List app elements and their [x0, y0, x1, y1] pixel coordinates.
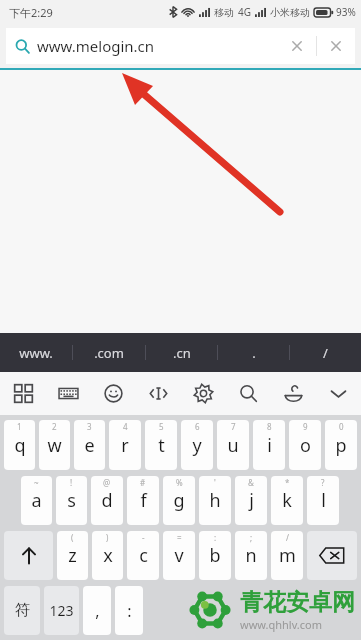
staticText: # — [140, 477, 146, 488]
button[interactable]: Emoji — [91, 372, 136, 415]
button[interactable]: l — [307, 476, 339, 525]
button[interactable]: .com — [73, 333, 145, 372]
button[interactable]: Backspace — [307, 531, 357, 580]
button[interactable]: z — [57, 531, 88, 580]
button[interactable]: p — [325, 420, 357, 470]
button[interactable]: 符 — [4, 586, 40, 635]
staticText: 2 — [52, 421, 57, 432]
button[interactable]: e — [74, 420, 105, 470]
button[interactable]: f — [127, 476, 159, 525]
staticText: 4G — [238, 5, 251, 19]
button[interactable]: Keyboard layout — [46, 372, 91, 415]
button[interactable]: y — [181, 420, 213, 470]
button[interactable]: b — [199, 531, 231, 580]
button[interactable]: Apps — [0, 372, 46, 415]
staticText: www.qhhlv.com — [240, 617, 322, 632]
button[interactable]: Voice input — [271, 372, 316, 415]
staticText: 3 — [87, 421, 92, 432]
staticText: ! — [70, 477, 73, 488]
button[interactable]: www. — [0, 333, 72, 372]
staticText: m — [279, 543, 296, 568]
staticText: 移动 — [214, 6, 234, 19]
staticText: .cn — [173, 344, 191, 362]
staticText: 6 — [195, 421, 200, 432]
button[interactable]: x — [92, 531, 123, 580]
button[interactable]: Clear text — [278, 28, 316, 64]
button[interactable]: , — [83, 586, 111, 635]
staticText: s — [67, 488, 76, 513]
button[interactable]: w — [39, 420, 70, 470]
button[interactable]: h — [199, 476, 231, 525]
staticText: = — [177, 532, 182, 543]
staticText: ? — [321, 477, 325, 488]
staticText: ) — [106, 532, 109, 543]
staticText: 123 — [49, 601, 74, 620]
staticText: www.melogin.cn — [37, 36, 155, 56]
button[interactable]: . — [218, 333, 289, 372]
staticText: o — [300, 433, 311, 458]
staticText: 青花安卓网 — [240, 588, 355, 617]
staticText: q — [14, 433, 26, 458]
button[interactable]: Close — [317, 28, 355, 64]
button[interactable]: t — [145, 420, 177, 470]
button[interactable]: d — [91, 476, 123, 525]
staticText: 下午2:29 — [9, 5, 53, 20]
staticText: ; — [250, 532, 253, 543]
button[interactable]: Hide keyboard — [316, 372, 361, 415]
staticText: r — [121, 433, 129, 458]
staticText: i — [267, 433, 272, 458]
button[interactable]: Cursor control — [136, 372, 181, 415]
staticText: 8 — [267, 421, 272, 432]
staticText: v — [174, 543, 184, 568]
staticText: f — [140, 488, 147, 513]
staticText: 5 — [159, 421, 164, 432]
button[interactable]: a — [21, 476, 52, 525]
staticText: ( — [71, 532, 74, 543]
staticText: / — [286, 532, 289, 543]
staticText: / — [323, 344, 328, 362]
staticText: a — [31, 488, 42, 513]
button[interactable]: Settings — [181, 372, 226, 415]
staticText: p — [335, 433, 347, 458]
staticText: 4 — [123, 421, 128, 432]
button[interactable]: k — [271, 476, 303, 525]
button[interactable]: 123 — [44, 586, 79, 635]
button[interactable]: i — [253, 420, 285, 470]
staticText: , — [95, 600, 100, 622]
button[interactable]: o — [289, 420, 321, 470]
button[interactable]: r — [109, 420, 141, 470]
button[interactable]: n — [235, 531, 267, 580]
button[interactable]: v — [163, 531, 195, 580]
staticText: b — [209, 543, 221, 568]
button[interactable]: q — [4, 420, 35, 470]
staticText: @ — [103, 477, 111, 488]
staticText: e — [84, 433, 95, 458]
button[interactable]: m — [271, 531, 303, 580]
staticText: n — [245, 543, 257, 568]
button[interactable]: g — [163, 476, 195, 525]
staticText: ' — [214, 477, 216, 488]
button[interactable]: .cn — [146, 333, 217, 372]
button[interactable]: j — [235, 476, 267, 525]
staticText: u — [227, 433, 239, 458]
staticText: g — [173, 488, 185, 513]
button[interactable]: s — [56, 476, 87, 525]
button[interactable]: : — [115, 586, 143, 635]
button[interactable]: www.melogin.cn — [6, 28, 278, 64]
button[interactable]: u — [217, 420, 249, 470]
button[interactable]: Shift — [4, 531, 53, 580]
staticText: : — [127, 600, 132, 622]
staticText: * — [285, 477, 290, 488]
staticText: 9 — [303, 421, 308, 432]
staticText: 0 — [339, 421, 344, 432]
staticText: j — [249, 488, 254, 513]
staticText: 1 — [17, 421, 22, 432]
staticText: t — [158, 433, 165, 458]
staticText: x — [103, 543, 113, 568]
staticText: c — [139, 543, 148, 568]
button[interactable]: / — [290, 333, 361, 372]
button[interactable]: Search — [226, 372, 271, 415]
button[interactable]: c — [127, 531, 159, 580]
staticText: % — [176, 477, 183, 488]
staticText: 7 — [231, 421, 236, 432]
